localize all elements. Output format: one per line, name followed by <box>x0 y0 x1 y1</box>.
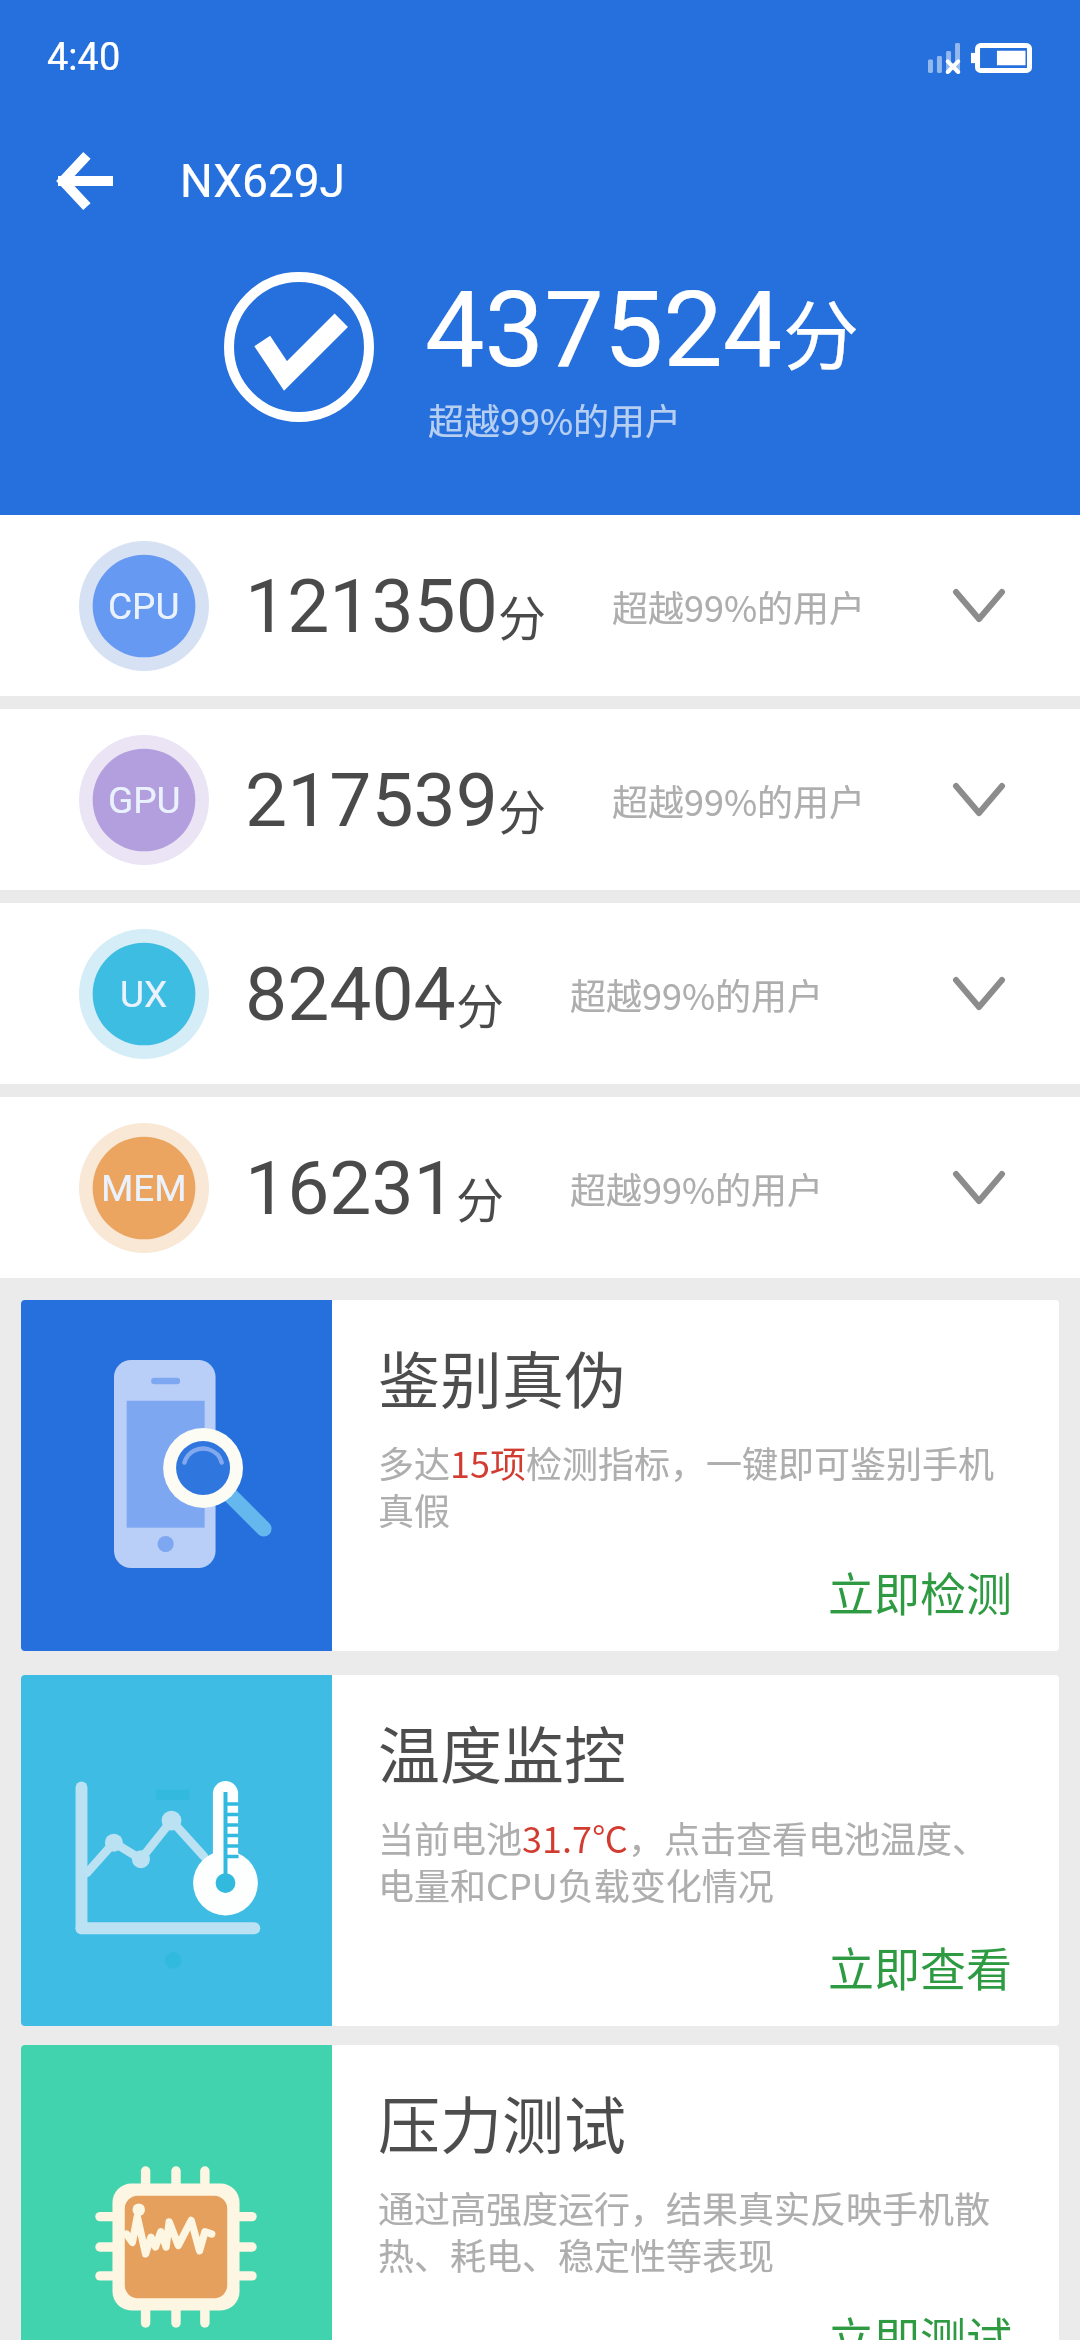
button[interactable]: GPU <box>0 709 1080 890</box>
staticText: 当前电池31.7℃，点击查看电池温度、电量和CPU负载变化情况 <box>378 1811 1019 1910</box>
staticText: 分 <box>456 1162 505 1232</box>
staticText: 4:40 <box>47 35 121 80</box>
button[interactable]: 温度监控 <box>21 1675 1059 2026</box>
staticText: 分 <box>498 580 547 650</box>
staticText: MEM <box>101 1167 187 1210</box>
staticText: UX <box>120 973 168 1016</box>
staticText: 立即查看 <box>828 1933 1012 2000</box>
staticText: 立即检测 <box>828 1558 1012 1625</box>
staticText: GPU <box>108 779 181 822</box>
button[interactable]: 压力测试 <box>21 2045 1059 2340</box>
button[interactable]: 鉴别真伪 <box>21 1300 1059 1651</box>
staticText: 压力测试 <box>378 2077 627 2167</box>
staticText: 82404 <box>245 950 456 1038</box>
staticText: 分 <box>498 774 547 844</box>
staticText: 超越99%的用户 <box>570 968 824 1020</box>
staticText: 分 <box>783 276 859 386</box>
staticText: CPU <box>108 585 180 628</box>
button[interactable]: CPU <box>0 515 1080 696</box>
staticText: NX629J <box>180 154 345 208</box>
staticText: 217539 <box>245 756 498 844</box>
staticText: 121350 <box>245 562 498 650</box>
staticText: 超越99%的用户 <box>570 1162 824 1214</box>
staticText: 分 <box>456 968 505 1038</box>
staticText: 16231 <box>245 1144 456 1232</box>
staticText: 通过高强度运行，结果真实反映手机散热、耗电、稳定性等表现 <box>378 2181 1019 2280</box>
button[interactable]: UX <box>0 903 1080 1084</box>
staticText: 立即测试 <box>828 2303 1012 2340</box>
button[interactable]: Back <box>29 127 137 235</box>
staticText: 超越99%的用户 <box>428 393 682 445</box>
button[interactable]: MEM <box>0 1097 1080 1278</box>
staticText: 温度监控 <box>378 1707 627 1797</box>
staticText: 鉴别真伪 <box>378 1332 627 1422</box>
staticText: 多达15项检测指标，一键即可鉴别手机真假 <box>378 1436 1019 1535</box>
staticText: 437524 <box>425 268 783 392</box>
staticText: 超越99%的用户 <box>612 580 866 632</box>
staticText: 超越99%的用户 <box>612 774 866 826</box>
